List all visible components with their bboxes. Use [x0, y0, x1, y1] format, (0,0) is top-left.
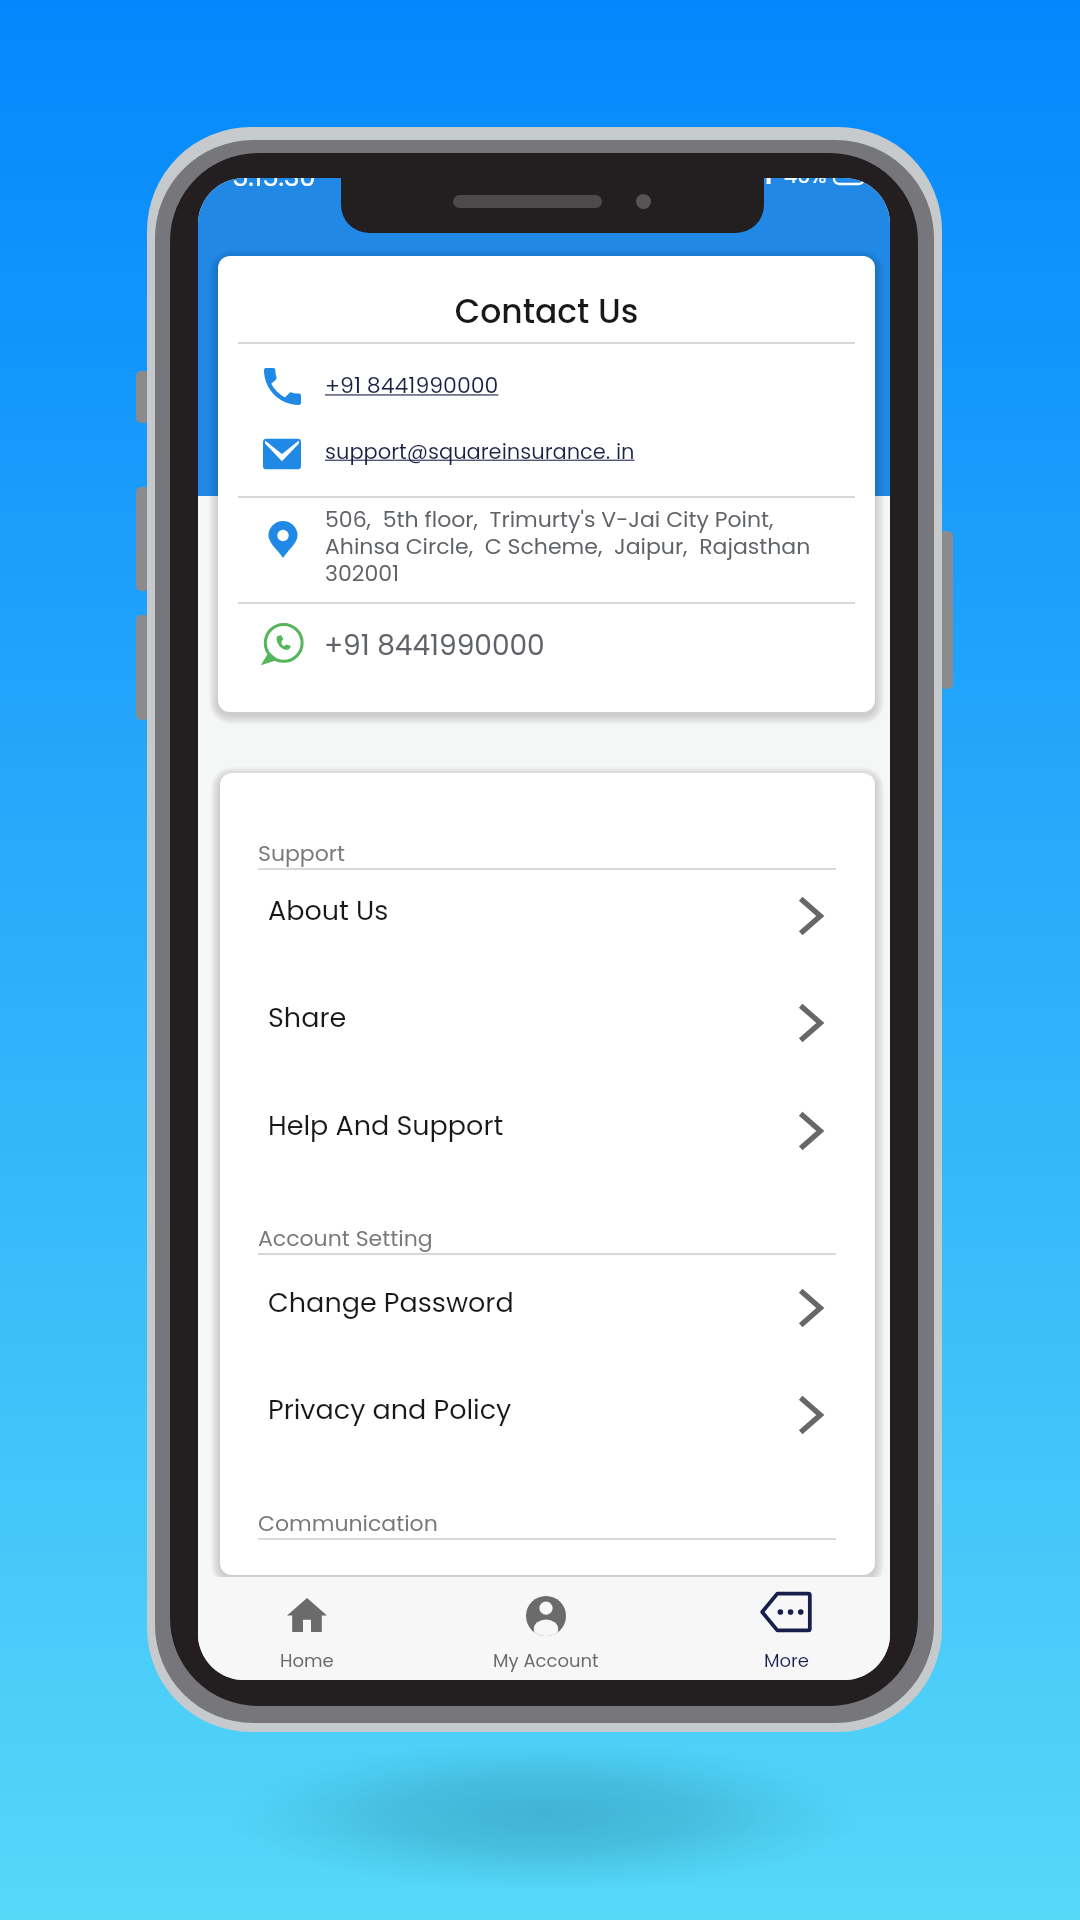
button[interactable]: 506, 5th floor, Trimurty's V-Jai City Po…: [238, 498, 855, 600]
staticText: Privacy and Policy: [268, 1391, 512, 1429]
staticText: Support: [258, 838, 346, 869]
staticText: support@squareinsurance. in: [325, 437, 635, 466]
button[interactable]: +91 8441990000: [238, 352, 855, 420]
button[interactable]: +91 8441990000: [238, 606, 855, 692]
button[interactable]: Privacy and Policy: [258, 1372, 836, 1448]
button[interactable]: Change Password: [258, 1265, 836, 1341]
button[interactable]: More: [681, 1577, 890, 1680]
button[interactable]: Share: [258, 980, 836, 1056]
staticText: More: [764, 1648, 809, 1673]
staticText: Help And Support: [268, 1107, 504, 1145]
staticText: Share: [268, 999, 347, 1037]
button[interactable]: support@squareinsurance. in: [238, 419, 855, 487]
staticText: About Us: [268, 892, 389, 930]
staticText: Contact Us: [218, 288, 875, 334]
staticText: Communication: [258, 1508, 438, 1539]
button[interactable]: Home: [202, 1577, 412, 1680]
button[interactable]: About Us: [258, 873, 836, 949]
staticText: Account Setting: [258, 1223, 433, 1254]
staticText: 40%: [784, 178, 827, 190]
staticText: Change Password: [268, 1284, 514, 1322]
staticText: +91 8441990000: [325, 370, 499, 401]
button[interactable]: Help And Support: [258, 1088, 836, 1164]
staticText: Home: [280, 1648, 334, 1673]
button[interactable]: My Account: [441, 1577, 651, 1680]
staticText: 506, 5th floor, Trimurty's V-Jai City Po…: [325, 504, 811, 588]
staticText: +91 8441990000: [324, 626, 545, 665]
staticText: 5:15:30: [232, 178, 316, 191]
staticText: My Account: [493, 1648, 599, 1673]
